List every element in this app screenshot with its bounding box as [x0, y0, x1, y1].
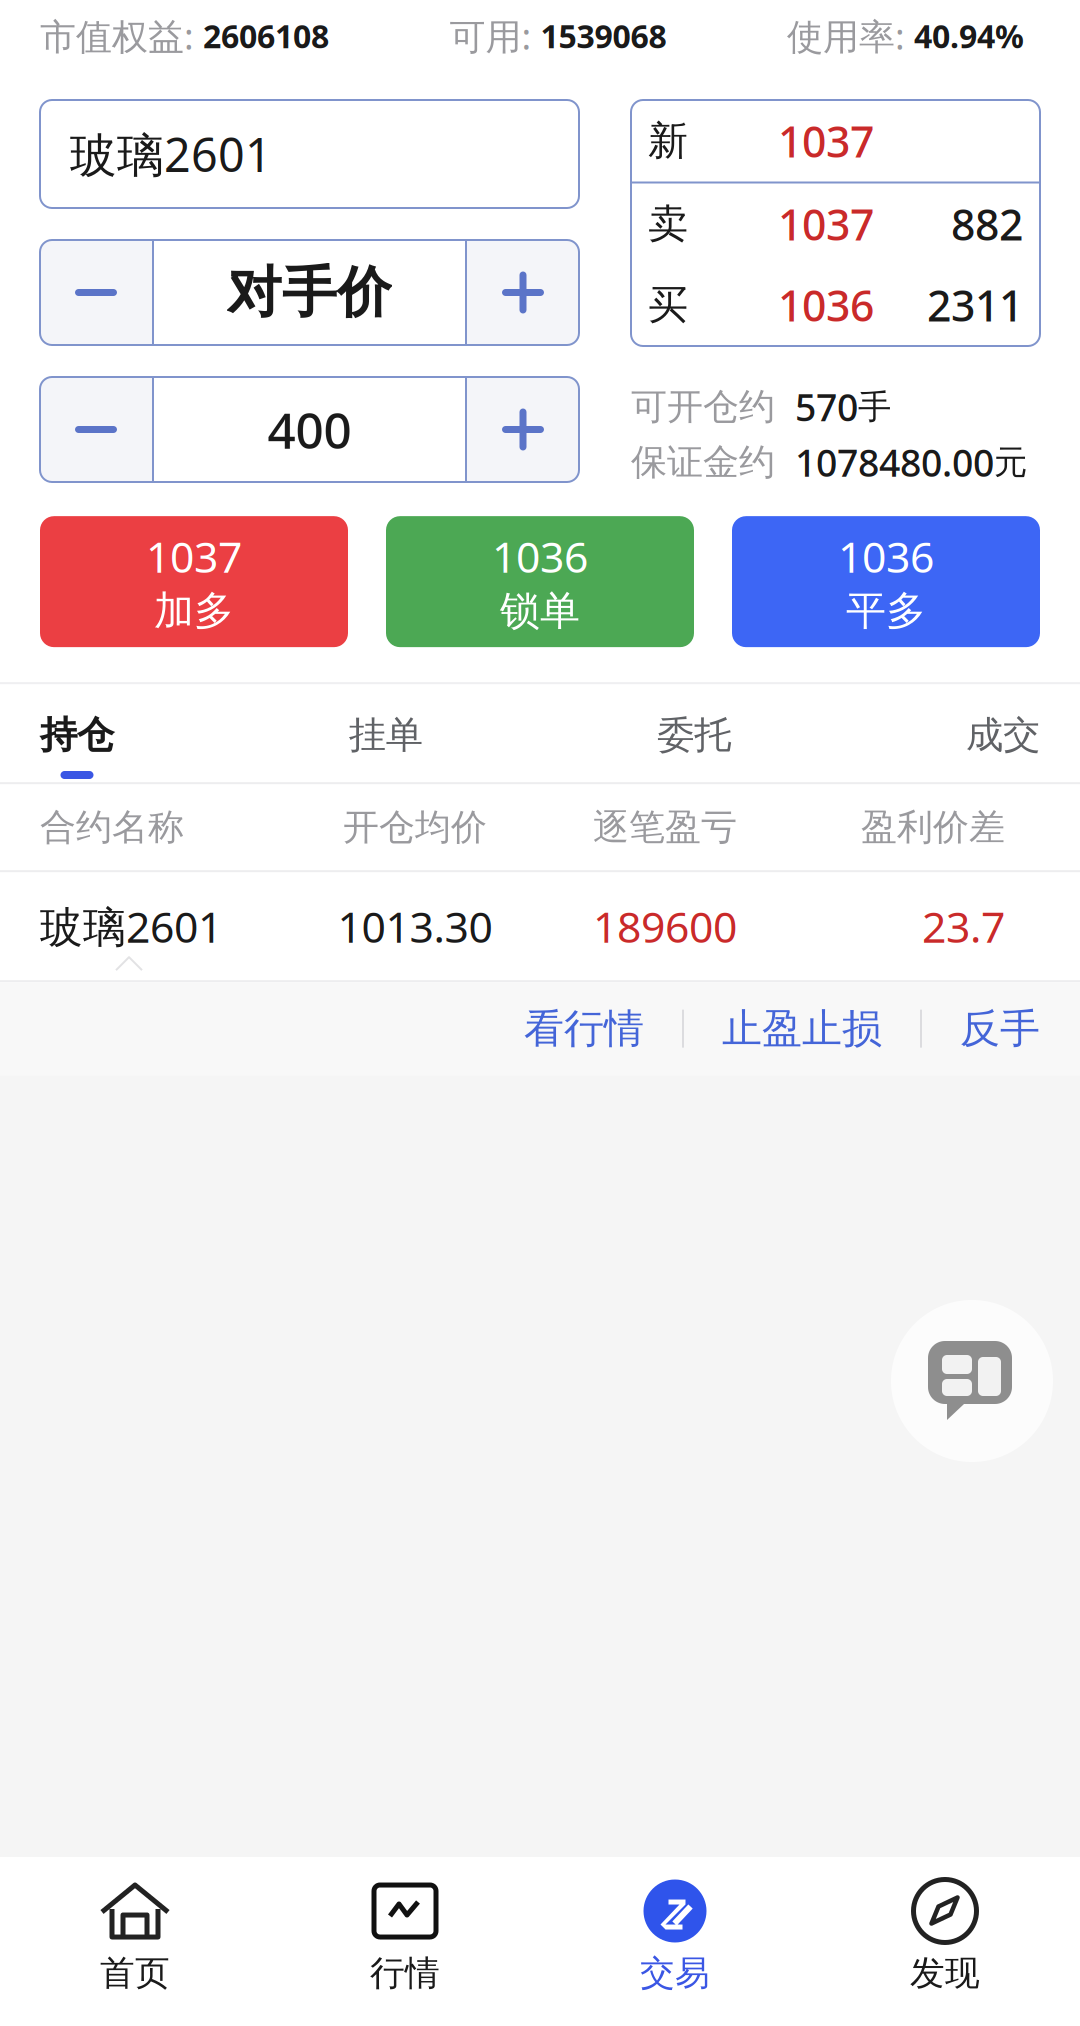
- button[interactable]: 持仓: [40, 684, 114, 782]
- staticText: 市值权益:: [40, 12, 203, 60]
- button[interactable]: 新: [631, 100, 1040, 181]
- staticText: 盈利价差: [861, 805, 1005, 849]
- staticText: 对手价: [227, 259, 392, 326]
- staticText: 行情: [370, 1952, 440, 1995]
- staticText: 可开仓约: [631, 385, 775, 429]
- staticText: 1036: [492, 528, 588, 584]
- staticText: 1539068: [540, 15, 666, 57]
- staticText: 40.94%: [914, 15, 1024, 57]
- staticText: 189600: [593, 898, 737, 954]
- staticText: 反手: [960, 1004, 1040, 1053]
- staticText: 买: [648, 280, 688, 329]
- button[interactable]: 行情: [270, 1857, 540, 2026]
- button[interactable]: 止盈止损: [722, 1004, 882, 1053]
- staticText: 卖: [648, 199, 688, 248]
- staticText: 使用率:: [787, 12, 914, 60]
- staticText: 手: [858, 386, 891, 427]
- staticText: 1013.30: [337, 898, 492, 954]
- staticText: 加多: [154, 586, 234, 635]
- staticText: 看行情: [524, 1004, 644, 1053]
- button[interactable]: Increase: [467, 240, 579, 345]
- button[interactable]: 玻璃2601: [40, 100, 579, 208]
- button[interactable]: 挂单: [349, 684, 423, 782]
- staticText: 1037: [146, 528, 242, 584]
- button[interactable]: 委托: [657, 684, 731, 782]
- staticText: 保证金约: [631, 440, 775, 484]
- staticText: 1078480.00: [775, 438, 994, 487]
- button[interactable]: 1036: [386, 516, 694, 647]
- staticText: 1037: [778, 196, 874, 252]
- staticText: 玻璃2601: [70, 123, 272, 185]
- staticText: 玻璃2601: [40, 898, 222, 954]
- staticText: 可用:: [449, 12, 540, 60]
- staticText: 锁单: [500, 586, 580, 635]
- staticText: 400: [267, 397, 351, 462]
- button[interactable]: 看行情: [524, 1004, 644, 1053]
- staticText: 570: [775, 382, 858, 432]
- staticText: 持仓: [40, 712, 114, 758]
- button[interactable]: Chat: [891, 1300, 1053, 1462]
- staticText: 交易: [640, 1952, 710, 1995]
- staticText: 成交: [966, 712, 1040, 758]
- staticText: 1037: [778, 113, 874, 169]
- staticText: 止盈止损: [722, 1004, 882, 1053]
- staticText: 2311: [927, 277, 1023, 333]
- button[interactable]: 首页: [0, 1857, 270, 2026]
- staticText: 新: [648, 116, 688, 165]
- button[interactable]: Decrease: [40, 240, 152, 345]
- button[interactable]: 交易: [540, 1857, 810, 2026]
- staticText: 元: [994, 442, 1027, 483]
- staticText: 首页: [100, 1952, 170, 1995]
- staticText: 委托: [657, 712, 731, 758]
- button[interactable]: 1037: [40, 516, 348, 647]
- button[interactable]: Decrease: [40, 377, 152, 482]
- staticText: 开仓均价: [343, 805, 487, 849]
- staticText: 882: [951, 196, 1023, 252]
- staticText: 23.7: [922, 898, 1005, 954]
- button[interactable]: 反手: [960, 1004, 1040, 1053]
- staticText: 逐笔盈亏: [593, 805, 737, 849]
- button[interactable]: 发现: [810, 1857, 1080, 2026]
- button[interactable]: 玻璃2601: [0, 872, 1080, 980]
- staticText: 挂单: [349, 712, 423, 758]
- button[interactable]: Increase: [467, 377, 579, 482]
- staticText: 合约名称: [40, 805, 184, 849]
- button[interactable]: 成交: [966, 684, 1040, 782]
- staticText: 1036: [838, 528, 934, 584]
- button[interactable]: 1036: [732, 516, 1040, 647]
- button[interactable]: 买: [631, 264, 1040, 345]
- staticText: 1036: [778, 277, 874, 333]
- staticText: 发现: [910, 1952, 980, 1995]
- staticText: 平多: [846, 586, 926, 635]
- button[interactable]: 卖: [631, 183, 1040, 264]
- staticText: 2606108: [203, 15, 329, 57]
